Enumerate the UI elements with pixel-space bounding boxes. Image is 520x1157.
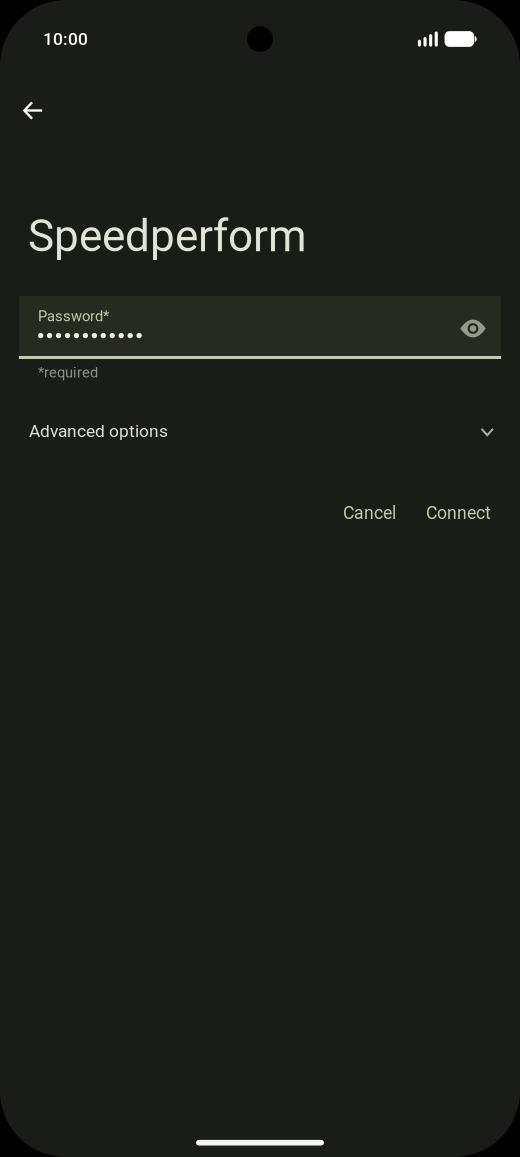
staticText: Password* (38, 308, 109, 325)
button[interactable]: Show password (451, 306, 495, 350)
button[interactable]: Back (9, 86, 57, 134)
staticText: Connect (426, 503, 491, 523)
staticText: Cancel (343, 503, 396, 523)
button[interactable]: Cancel (328, 489, 411, 537)
staticText: Advanced options (29, 421, 168, 441)
button[interactable]: Advanced options (0, 393, 520, 469)
staticText: Speedperform (28, 210, 307, 262)
button[interactable]: Connect (411, 489, 506, 537)
staticText: 10:00 (43, 29, 88, 49)
staticText: *required (38, 364, 98, 381)
